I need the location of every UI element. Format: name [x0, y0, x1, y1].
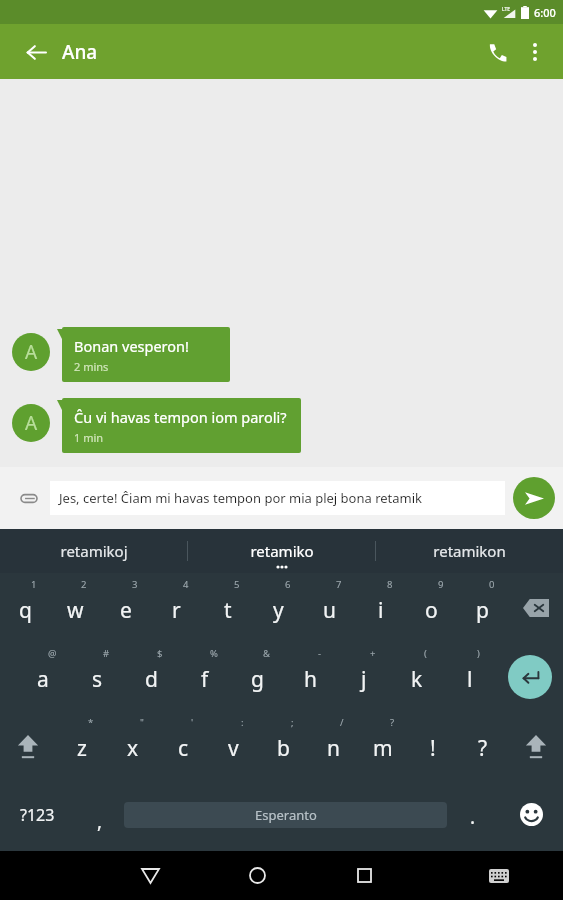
- button[interactable]: /: [308, 711, 358, 780]
- button[interactable]: 8: [355, 573, 406, 642]
- staticText: ': [191, 716, 194, 729]
- button[interactable]: Back: [18, 34, 54, 70]
- button[interactable]: retamiko: [188, 529, 375, 573]
- button[interactable]: %: [178, 642, 231, 711]
- button[interactable]: 3: [100, 573, 151, 642]
- button[interactable]: More options: [517, 34, 553, 70]
- button[interactable]: Shift: [0, 711, 56, 780]
- button[interactable]: 0: [457, 573, 508, 642]
- staticText: v: [228, 734, 239, 763]
- button[interactable]: ?: [458, 711, 508, 780]
- staticText: #: [103, 647, 110, 660]
- button[interactable]: !: [408, 711, 458, 780]
- staticText: 1: [31, 578, 37, 591]
- staticText: w: [67, 596, 84, 625]
- button[interactable]: Enter: [496, 642, 563, 711]
- staticText: q: [19, 596, 32, 625]
- button[interactable]: Backspace: [508, 573, 563, 642]
- button[interactable]: ;: [258, 711, 308, 780]
- staticText: 5: [234, 578, 240, 591]
- button[interactable]: &: [231, 642, 284, 711]
- staticText: 4: [183, 578, 189, 591]
- staticText: j: [361, 665, 367, 694]
- staticText: .: [470, 804, 476, 830]
- staticText: A: [25, 410, 38, 436]
- staticText: +: [370, 647, 376, 660]
- button[interactable]: ): [443, 642, 496, 711]
- staticText: r: [172, 596, 181, 625]
- button[interactable]: ,: [75, 780, 124, 849]
- staticText: Jes, certe! Ĉiam mi havas tempon por mia…: [59, 489, 423, 507]
- staticText: i: [378, 596, 384, 625]
- staticText: z: [77, 734, 87, 763]
- button[interactable]: Hide keyboard: [97, 851, 204, 900]
- staticText: /: [340, 716, 344, 729]
- button[interactable]: Switch keyboard: [456, 851, 542, 900]
- button[interactable]: Send: [513, 477, 555, 519]
- button[interactable]: ': [158, 711, 208, 780]
- staticText: :: [241, 716, 244, 729]
- staticText: @: [48, 647, 57, 660]
- staticText: ": [140, 716, 144, 729]
- staticText: Esperanto: [255, 806, 317, 824]
- staticText: !: [430, 734, 436, 763]
- button[interactable]: Bonan vesperon!: [62, 327, 230, 382]
- button[interactable]: -: [284, 642, 337, 711]
- button[interactable]: $: [124, 642, 178, 711]
- button[interactable]: +: [337, 642, 390, 711]
- staticText: 6:00: [534, 5, 556, 20]
- staticText: Ana: [62, 39, 98, 65]
- button[interactable]: Call: [477, 32, 517, 72]
- button[interactable]: Jes, certe! Ĉiam mi havas tempon por mia…: [50, 481, 505, 515]
- staticText: o: [425, 596, 438, 625]
- staticText: &: [263, 647, 270, 660]
- button[interactable]: ?123: [0, 780, 75, 849]
- staticText: m: [373, 734, 393, 763]
- button[interactable]: 4: [151, 573, 202, 642]
- button[interactable]: 6: [253, 573, 304, 642]
- staticText: 6: [285, 578, 291, 591]
- button[interactable]: retamikoj: [0, 529, 187, 573]
- staticText: x: [127, 734, 139, 763]
- button[interactable]: Ĉu vi havas tempon iom paroli?: [62, 398, 301, 453]
- button[interactable]: ": [107, 711, 158, 780]
- button[interactable]: retamikon: [376, 529, 563, 573]
- staticText: 2: [81, 578, 87, 591]
- staticText: t: [224, 596, 232, 625]
- button[interactable]: .: [447, 780, 499, 849]
- staticText: (: [424, 647, 427, 660]
- staticText: ?123: [20, 804, 55, 826]
- button[interactable]: Shift: [508, 711, 563, 780]
- staticText: A: [25, 339, 38, 365]
- staticText: s: [92, 665, 103, 694]
- staticText: retamikon: [433, 541, 506, 561]
- staticText: ): [477, 647, 480, 660]
- staticText: *: [88, 716, 94, 729]
- button[interactable]: 5: [202, 573, 253, 642]
- staticText: h: [304, 665, 317, 694]
- staticText: n: [327, 734, 340, 763]
- button[interactable]: *: [56, 711, 107, 780]
- button[interactable]: Emoji: [499, 780, 563, 849]
- staticText: 2 mins: [74, 359, 109, 374]
- button[interactable]: 1: [0, 573, 50, 642]
- button[interactable]: #: [70, 642, 124, 711]
- button[interactable]: Esperanto: [124, 780, 447, 849]
- staticText: retamikoj: [60, 541, 128, 561]
- button[interactable]: @: [16, 642, 70, 711]
- button[interactable]: 2: [50, 573, 100, 642]
- button[interactable]: Home: [204, 851, 311, 900]
- button[interactable]: 9: [406, 573, 457, 642]
- staticText: c: [178, 734, 189, 763]
- staticText: %: [210, 647, 218, 660]
- staticText: d: [145, 665, 158, 694]
- button[interactable]: ?: [358, 711, 408, 780]
- staticText: g: [251, 665, 264, 694]
- button[interactable]: Recent apps: [311, 851, 418, 900]
- staticText: retamiko: [250, 541, 314, 561]
- staticText: ?: [478, 734, 488, 763]
- button[interactable]: Attach: [8, 477, 50, 519]
- button[interactable]: (: [390, 642, 443, 711]
- button[interactable]: 7: [304, 573, 355, 642]
- button[interactable]: :: [208, 711, 258, 780]
